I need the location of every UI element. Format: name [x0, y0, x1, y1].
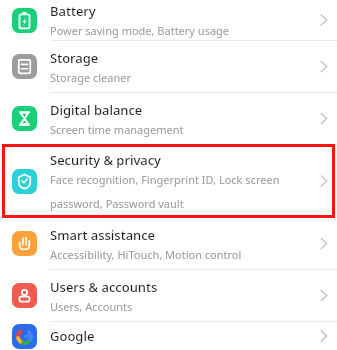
staticText: Google: [50, 327, 95, 345]
staticText: Screen time management: [50, 122, 184, 137]
button[interactable]: Digital balance: [0, 93, 337, 144]
button[interactable]: Storage: [0, 41, 337, 92]
staticText: Face recognition, Fingerprint ID, Lock s…: [50, 172, 280, 187]
other: Smart assistance: [12, 231, 37, 256]
other: Storage: [12, 54, 37, 79]
staticText: Digital balance: [50, 101, 143, 119]
staticText: Users & accounts: [50, 278, 158, 296]
other: Battery: [12, 8, 37, 33]
button[interactable]: Security and privacy: [0, 144, 337, 218]
button[interactable]: Users and accounts: [0, 270, 337, 321]
staticText: Power saving mode, Battery usage: [50, 23, 230, 38]
other: Security and privacy: [12, 169, 37, 194]
button[interactable]: Google: [0, 322, 337, 350]
other: Digital balance: [12, 106, 37, 131]
staticText: Security & privacy: [50, 151, 161, 169]
staticText: Smart assistance: [50, 226, 156, 244]
other: Google: [12, 324, 37, 349]
other: Users and accounts: [12, 283, 37, 308]
staticText: password, Password vault: [50, 196, 184, 211]
staticText: Accessibility, HiTouch, Motion control: [50, 247, 242, 262]
button[interactable]: Battery: [0, 0, 337, 40]
staticText: Storage: [50, 49, 99, 67]
staticText: Battery: [50, 2, 96, 20]
button[interactable]: Smart assistance: [0, 218, 337, 269]
staticText: Storage cleaner: [50, 70, 132, 85]
staticText: Users, Accounts: [50, 299, 133, 314]
